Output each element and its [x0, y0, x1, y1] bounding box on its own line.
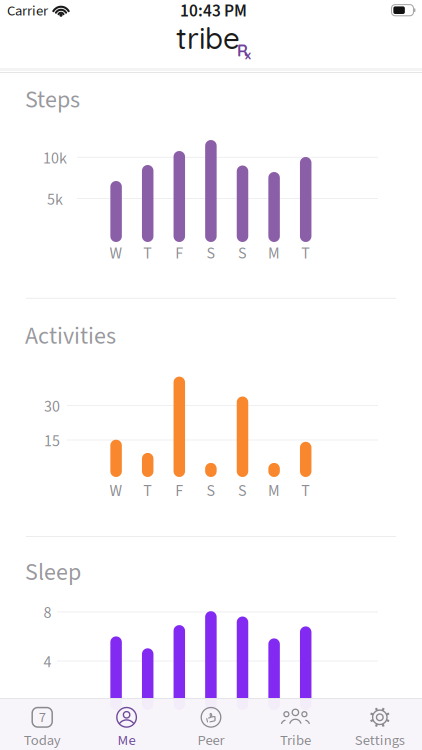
- staticText: Activities: [25, 319, 116, 353]
- staticText: 15: [44, 430, 60, 453]
- staticText: M: [268, 242, 280, 265]
- staticText: tribe: [176, 20, 240, 56]
- staticText: F: [175, 242, 183, 265]
- staticText: T: [143, 242, 152, 265]
- staticText: 5k: [47, 188, 63, 211]
- staticText: Peer: [197, 730, 224, 750]
- button[interactable]: Me: [84, 698, 169, 750]
- staticText: Sleep: [25, 555, 81, 590]
- staticText: 7: [39, 707, 46, 728]
- button[interactable]: Peer: [169, 698, 253, 750]
- staticText: S: [238, 480, 247, 502]
- staticText: F: [175, 480, 183, 502]
- staticText: Tribe: [280, 730, 311, 750]
- staticText: R: [237, 40, 248, 60]
- staticText: 30: [44, 395, 60, 418]
- staticText: Me: [118, 730, 136, 750]
- staticText: T: [143, 480, 152, 502]
- button[interactable]: Tribe: [253, 698, 338, 750]
- staticText: T: [301, 480, 310, 502]
- staticText: W: [110, 242, 123, 265]
- staticText: Steps: [25, 83, 80, 117]
- staticText: M: [268, 480, 280, 502]
- staticText: 8: [43, 602, 51, 624]
- staticText: 4: [43, 651, 51, 674]
- staticText: W: [110, 480, 123, 502]
- staticText: x: [245, 47, 251, 62]
- staticText: Today: [24, 730, 61, 750]
- staticText: S: [238, 242, 247, 265]
- staticText: Settings: [355, 730, 405, 750]
- staticText: 10k: [43, 147, 67, 170]
- staticText: S: [206, 480, 215, 502]
- staticText: S: [206, 242, 215, 265]
- button[interactable]: Settings: [338, 698, 422, 750]
- staticText: T: [301, 242, 310, 265]
- button[interactable]: 7: [0, 698, 84, 750]
- staticText: Carrier: [7, 1, 48, 21]
- staticText: 10:43 PM: [180, 0, 247, 23]
